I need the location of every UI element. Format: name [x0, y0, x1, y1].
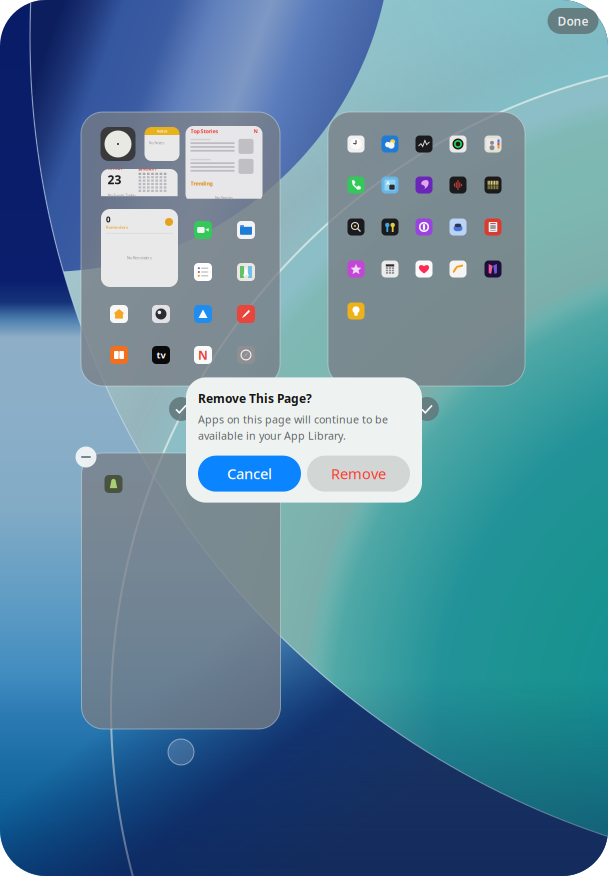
staticText: No Reminders: [127, 255, 152, 260]
staticText: Top Stories: [190, 128, 218, 135]
button[interactable]: Cancel: [198, 456, 301, 492]
staticText: Apps on this page will continue to be: [198, 412, 388, 426]
staticText: 23: [108, 171, 122, 187]
staticText: available in your App Library.: [198, 428, 346, 443]
staticText: Notes: [156, 128, 167, 134]
staticText: JANUARY: [139, 166, 158, 171]
staticText: 0: [106, 214, 111, 225]
button[interactable]: Remove: [307, 456, 410, 492]
button[interactable]: A: [328, 112, 525, 386]
staticText: FRIDAY: [108, 166, 124, 171]
button[interactable]: Done: [547, 8, 598, 34]
staticText: Cancel: [227, 464, 272, 483]
button[interactable]: [81, 453, 280, 729]
staticText: N: [198, 347, 208, 363]
button[interactable]: Remove page: [75, 446, 96, 467]
staticText: Remove This Page?: [198, 390, 312, 406]
staticText: Remove: [331, 464, 386, 483]
staticText: tv: [156, 349, 165, 361]
staticText: Done: [557, 13, 588, 29]
staticText: No Stories: [215, 195, 233, 200]
staticText: Trending: [190, 180, 212, 187]
staticText: A: [386, 179, 390, 187]
staticText: N: [253, 128, 257, 135]
button[interactable]: Notes: [81, 112, 280, 386]
staticText: No Notes: [148, 140, 164, 145]
staticText: Reminders: [106, 225, 128, 230]
staticText: No Events Today: [108, 192, 136, 198]
